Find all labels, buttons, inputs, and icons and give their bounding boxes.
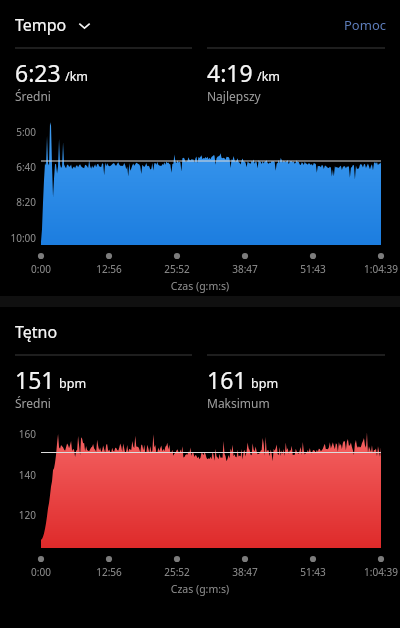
staticText: 120 (0, 508, 36, 522)
staticText: 25:52 (151, 565, 203, 579)
staticText: 5:00 (0, 125, 36, 139)
staticText: Tempo (15, 14, 67, 36)
staticText: 0:00 (15, 565, 67, 579)
staticText: Czas (g:m:s) (0, 582, 400, 596)
button[interactable]: 161 (207, 355, 385, 411)
staticText: 38:47 (219, 262, 271, 276)
staticText: 25:52 (151, 262, 203, 276)
staticText: 0:00 (15, 262, 67, 276)
staticText: 12:56 (83, 262, 135, 276)
staticText: 1:04:39 (355, 565, 400, 579)
staticText: 1:04:39 (355, 262, 400, 276)
staticText: 8:20 (0, 195, 36, 209)
button[interactable]: Tętno (15, 321, 58, 343)
staticText: Pomoc (344, 16, 386, 34)
staticText: 51:43 (287, 565, 339, 579)
button[interactable]: Tempo (15, 14, 91, 36)
staticText: 38:47 (219, 565, 271, 579)
staticText: 160 (0, 427, 36, 441)
staticText: 161 (207, 364, 247, 395)
staticText: Czas (g:m:s) (0, 279, 400, 293)
staticText: Tętno (15, 321, 58, 343)
staticText: 12:56 (83, 565, 135, 579)
button[interactable]: 6:23 (15, 48, 192, 104)
staticText: Średni (15, 395, 51, 411)
staticText: 51:43 (287, 262, 339, 276)
staticText: 151 (15, 364, 55, 395)
staticText: Maksimum (207, 395, 270, 411)
staticText: /km (257, 68, 281, 85)
button[interactable]: 4:19 (207, 48, 385, 104)
staticText: 6:40 (0, 160, 36, 174)
staticText: bpm (59, 375, 87, 392)
staticText: Najlepszy (207, 88, 261, 104)
button[interactable]: Pomoc (344, 16, 386, 34)
staticText: /km (65, 68, 89, 85)
staticText: 4:19 (207, 57, 253, 88)
staticText: 10:00 (0, 231, 36, 245)
staticText: 6:23 (15, 57, 61, 88)
staticText: bpm (251, 375, 279, 392)
staticText: Średni (15, 88, 51, 104)
staticText: 140 (0, 468, 36, 482)
button[interactable]: 151 (15, 355, 192, 411)
